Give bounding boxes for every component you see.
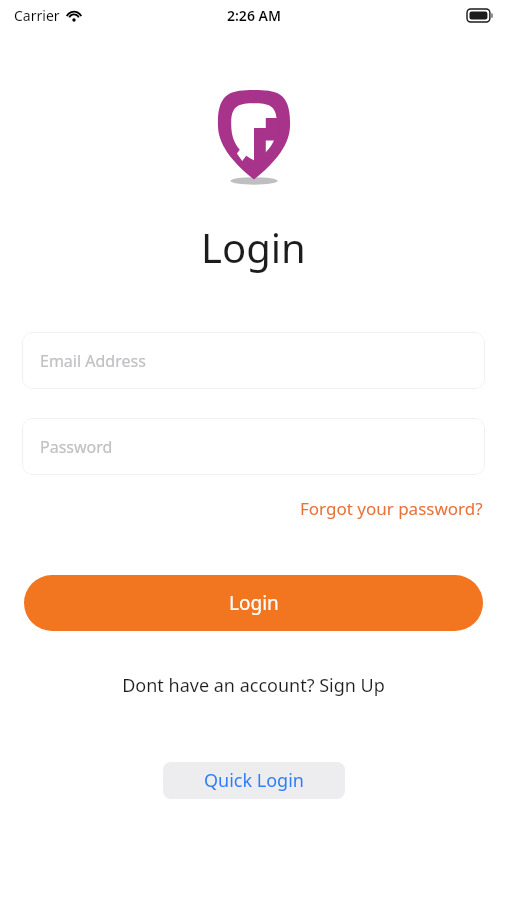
button[interactable]: Forgot your password? [298,494,485,523]
staticText: Quick Login [204,768,304,793]
button[interactable]: Email Address [22,332,485,389]
button[interactable]: Quick Login [163,762,345,799]
staticText: Login [201,220,306,274]
button[interactable]: Login [24,575,483,631]
staticText: Forgot your password? [300,497,483,520]
staticText: Carrier [14,6,60,25]
staticText: Email Address [40,350,146,372]
staticText: Login [229,590,279,616]
staticText: Password [40,436,113,458]
staticText: Dont have an account? Sign Up [122,673,385,698]
button[interactable]: Dont have an account? Sign Up [118,669,389,702]
button[interactable]: Password [22,418,485,475]
staticText: 2:26 AM [227,6,281,25]
